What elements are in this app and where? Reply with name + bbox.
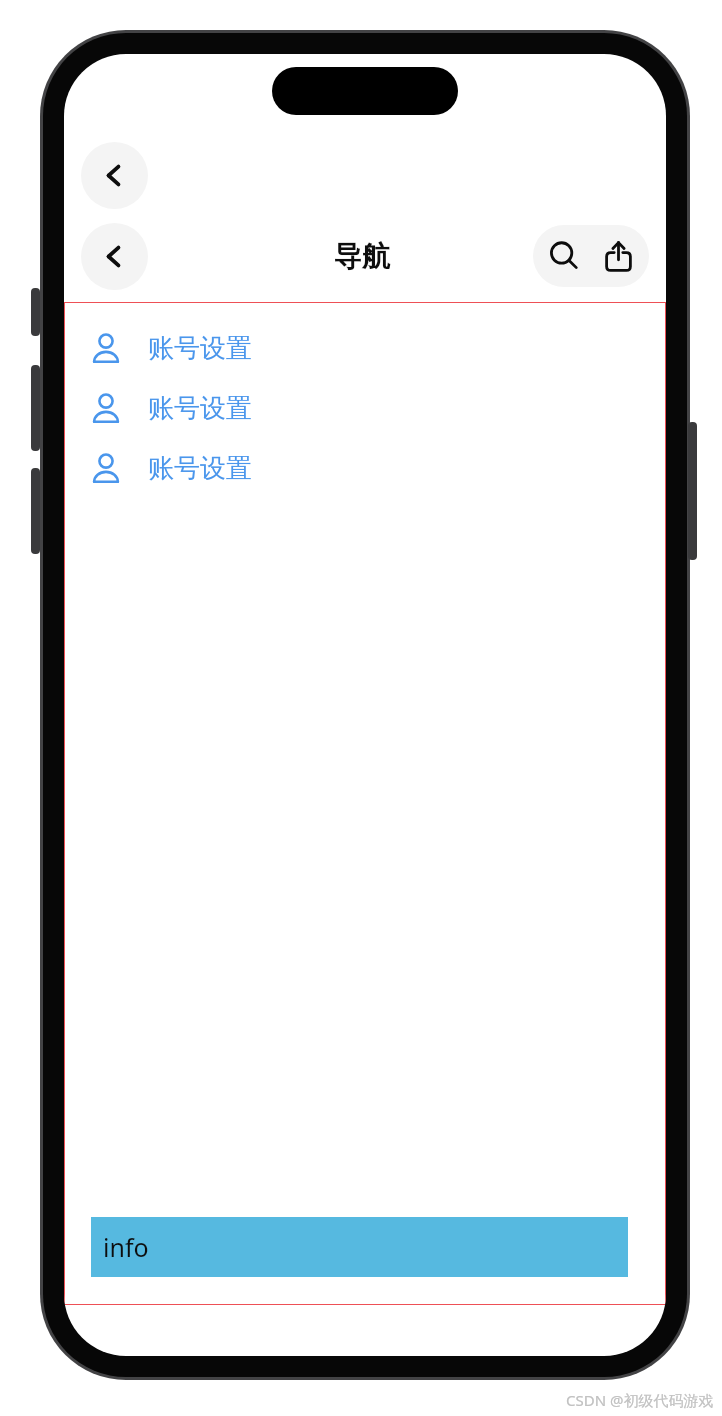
button[interactable]: 账号设置 — [64, 318, 666, 378]
button[interactable]: 账号设置 — [64, 378, 666, 438]
button[interactable]: info — [91, 1217, 628, 1277]
staticText: info — [103, 1230, 149, 1264]
staticText: 导航 — [334, 239, 390, 274]
button[interactable]: Share — [591, 229, 645, 283]
staticText: 账号设置 — [148, 452, 252, 485]
button[interactable]: Back — [81, 142, 148, 209]
staticText: CSDN @初级代码游戏 — [566, 1390, 714, 1410]
staticText: 账号设置 — [148, 392, 252, 425]
staticText: 账号设置 — [148, 332, 252, 365]
button[interactable]: 账号设置 — [64, 438, 666, 498]
button[interactable]: Search — [537, 229, 591, 283]
button[interactable]: Back — [81, 223, 148, 290]
